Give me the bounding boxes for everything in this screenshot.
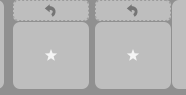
button[interactable]: Favorite bbox=[95, 22, 171, 89]
button[interactable]: Reply bbox=[95, 0, 171, 21]
button[interactable]: Reply bbox=[13, 0, 89, 21]
button[interactable]: Favorite bbox=[13, 22, 89, 89]
